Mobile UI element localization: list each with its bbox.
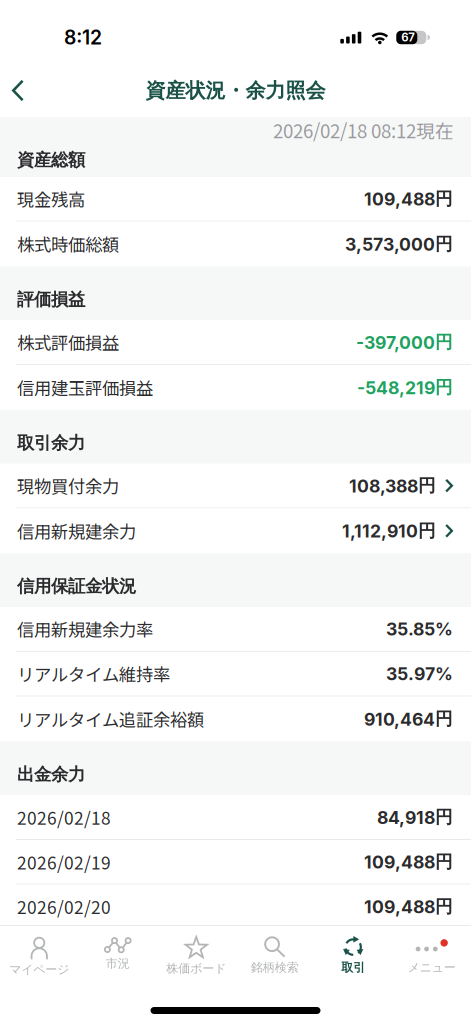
staticText: 資産総額 xyxy=(17,149,85,171)
staticText: 910,464円 xyxy=(364,708,453,730)
staticText: 株式評価損益 xyxy=(17,330,119,355)
staticText: 108,388円 xyxy=(349,475,436,497)
staticText: 取引 xyxy=(341,960,365,975)
button[interactable]: 取引 xyxy=(314,926,392,988)
staticText: 信用保証金状況 xyxy=(17,575,136,597)
staticText: 2026/02/18 xyxy=(17,805,111,830)
staticText: 35.85% xyxy=(386,618,453,640)
staticText: 3,573,000円 xyxy=(345,233,453,255)
staticText: 株価ボード xyxy=(166,961,226,976)
staticText: リアルタイム追証余裕額 xyxy=(17,706,204,731)
staticText: 信用新規建余力率 xyxy=(17,616,153,642)
button[interactable]: 市況 xyxy=(78,926,157,988)
staticText: 2026/02/18 08:12現在 xyxy=(273,116,454,143)
staticText: 信用建玉評価損益 xyxy=(17,375,153,400)
button[interactable]: 銘柄検索 xyxy=(235,926,314,988)
staticText: 1,112,910円 xyxy=(342,520,436,542)
staticText: 取引余力 xyxy=(17,432,85,454)
button[interactable]: マイページ xyxy=(0,926,78,988)
staticText: マイページ xyxy=(9,962,69,977)
button[interactable]: 信用新規建余力 xyxy=(0,508,471,553)
button[interactable]: メニュー xyxy=(392,926,471,988)
staticText: 84,918円 xyxy=(377,806,453,828)
staticText: -397,000円 xyxy=(356,331,453,353)
staticText: 35.97% xyxy=(386,663,453,684)
staticText: 現物買付余力 xyxy=(17,473,119,498)
staticText: 109,488円 xyxy=(364,895,453,918)
staticText: 出金余力 xyxy=(17,763,85,785)
staticText: 市況 xyxy=(106,956,130,971)
staticText: リアルタイム維持率 xyxy=(17,661,170,686)
staticText: 現金残高 xyxy=(17,186,85,211)
staticText: 109,488円 xyxy=(364,188,453,210)
button[interactable]: 現物買付余力 xyxy=(0,464,471,508)
staticText: 8:12 xyxy=(64,26,102,49)
staticText: 2026/02/19 xyxy=(17,849,111,874)
staticText: -548,219円 xyxy=(357,376,453,399)
staticText: 2026/02/20 xyxy=(17,894,111,919)
staticText: 信用新規建余力 xyxy=(17,518,136,543)
staticText: 67 xyxy=(401,31,415,44)
button[interactable]: 戻る xyxy=(0,64,38,117)
staticText: 資産状況・余力照会 xyxy=(145,78,325,103)
staticText: 銘柄検索 xyxy=(251,960,299,975)
staticText: 評価損益 xyxy=(17,289,85,310)
staticText: メニュー xyxy=(408,960,456,975)
staticText: 109,488円 xyxy=(364,851,453,873)
button[interactable]: 株価ボード xyxy=(157,926,235,988)
staticText: 株式時価総額 xyxy=(17,231,119,257)
